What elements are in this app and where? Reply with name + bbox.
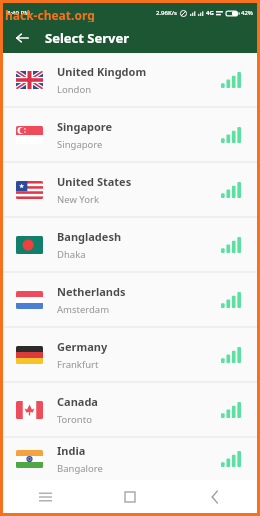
- staticText: 2.96K/s: [156, 9, 177, 17]
- button[interactable]: United States: [3, 163, 257, 216]
- staticText: United Kingdom: [57, 64, 147, 79]
- staticText: Dhaka: [57, 248, 86, 261]
- staticText: India: [57, 443, 86, 458]
- button[interactable]: Recent apps: [3, 480, 87, 513]
- staticText: Germany: [57, 339, 108, 354]
- staticText: Bangalore: [57, 462, 103, 475]
- staticText: 4G: [206, 9, 214, 17]
- button[interactable]: Netherlands: [3, 273, 257, 326]
- staticText: London: [57, 83, 92, 96]
- button[interactable]: Germany: [3, 328, 257, 381]
- staticText: Frankfurt: [57, 358, 99, 371]
- button[interactable]: United Kingdom: [3, 53, 257, 106]
- staticText: United States: [57, 174, 132, 189]
- staticText: Canada: [57, 394, 98, 409]
- staticText: Bangladesh: [57, 229, 122, 244]
- staticText: 8:40 PM: [7, 9, 30, 17]
- button[interactable]: Back: [11, 27, 33, 49]
- staticText: 42%: [241, 9, 253, 17]
- button[interactable]: Canada: [3, 383, 257, 436]
- button[interactable]: Back: [172, 480, 257, 513]
- staticText: New York: [57, 193, 99, 206]
- staticText: Select Server: [45, 29, 130, 47]
- staticText: hack-cheat.org: [5, 7, 95, 22]
- staticText: Amsterdam: [57, 303, 110, 316]
- button[interactable]: Singapore: [3, 108, 257, 161]
- button[interactable]: Bangladesh: [3, 218, 257, 271]
- staticText: Singapore: [57, 138, 103, 151]
- staticText: Netherlands: [57, 284, 126, 299]
- button[interactable]: Home: [87, 480, 172, 513]
- staticText: Singapore: [57, 119, 113, 134]
- button[interactable]: India: [3, 438, 257, 480]
- staticText: Toronto: [57, 413, 92, 426]
